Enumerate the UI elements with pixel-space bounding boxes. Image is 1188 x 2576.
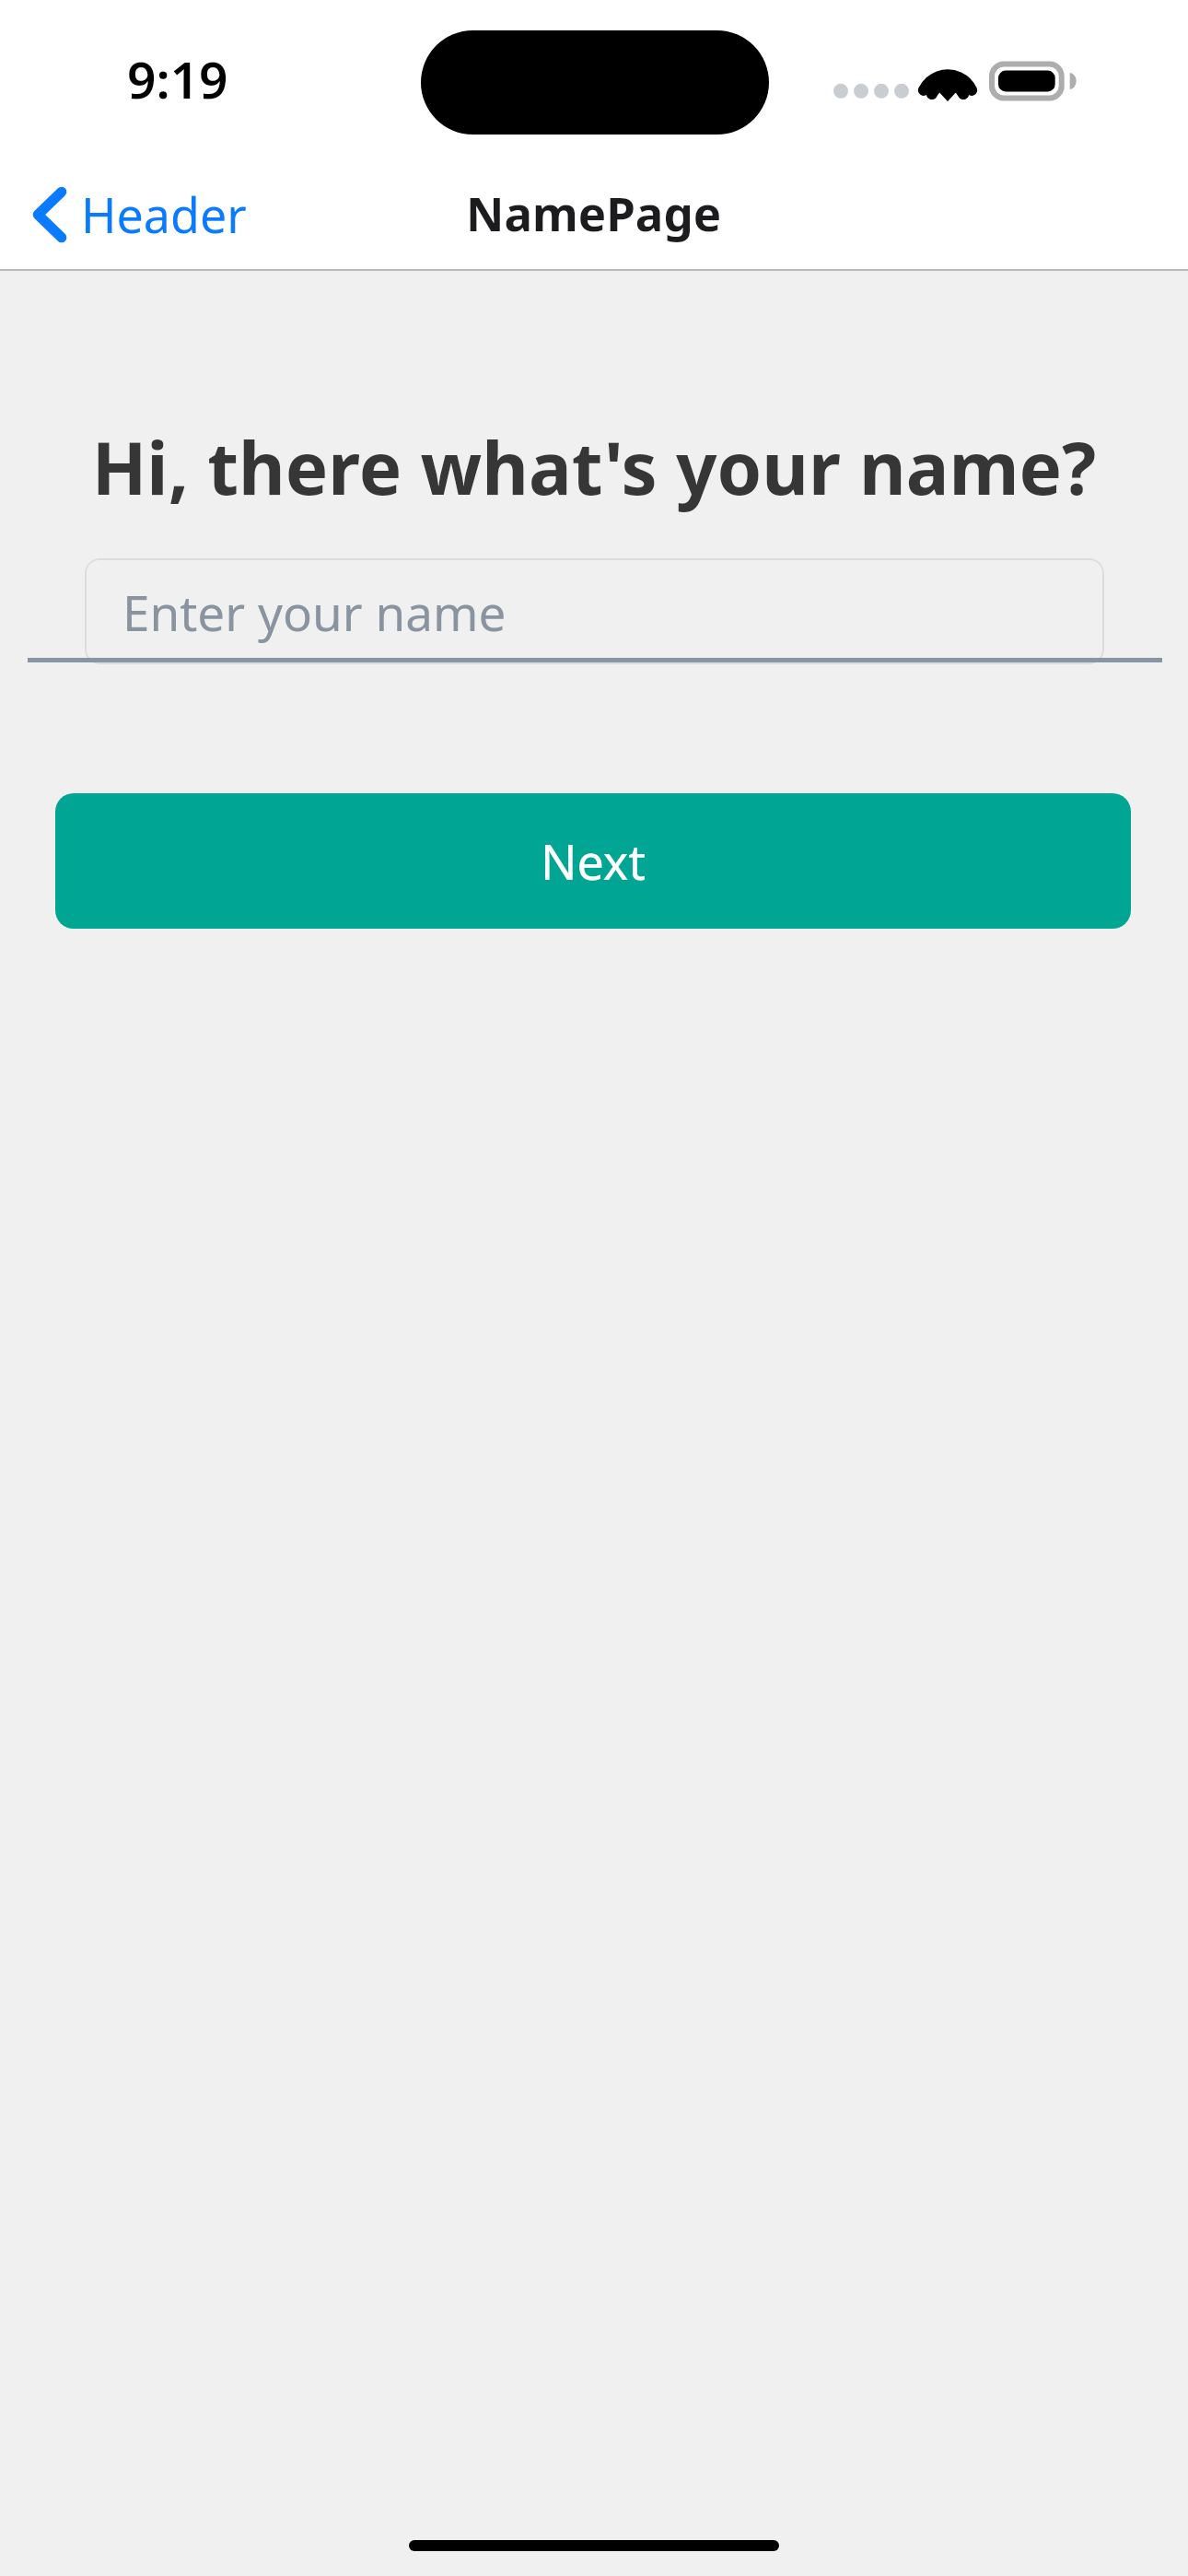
- button[interactable]: Header: [26, 174, 252, 254]
- staticText: Enter your name: [122, 579, 507, 645]
- staticText: 9:19: [127, 44, 228, 109]
- button[interactable]: Next: [55, 793, 1131, 929]
- staticText: Next: [541, 828, 646, 894]
- staticText: Header: [81, 181, 247, 247]
- button[interactable]: Enter your name: [85, 558, 1104, 664]
- staticText: NamePage: [466, 181, 722, 244]
- staticText: Hi, there what's your name?: [55, 418, 1133, 516]
